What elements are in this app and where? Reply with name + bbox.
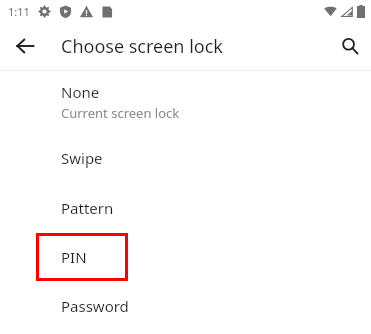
staticText: Pattern bbox=[61, 198, 114, 218]
staticText: 1:11 bbox=[8, 4, 30, 19]
button[interactable]: Swipe bbox=[0, 133, 371, 183]
staticText: Swipe bbox=[61, 148, 103, 168]
staticText: Current screen lock bbox=[61, 104, 180, 122]
button[interactable]: PIN bbox=[0, 233, 371, 281]
button[interactable]: Back bbox=[5, 26, 45, 66]
staticText: None bbox=[61, 82, 100, 102]
staticText: Password bbox=[61, 296, 129, 316]
staticText: PIN bbox=[61, 247, 87, 267]
button[interactable]: Search bbox=[330, 26, 370, 66]
staticText: Choose screen lock bbox=[61, 34, 223, 59]
button[interactable]: None bbox=[0, 71, 371, 133]
button[interactable]: Pattern bbox=[0, 183, 371, 233]
button[interactable]: Password bbox=[0, 281, 371, 330]
